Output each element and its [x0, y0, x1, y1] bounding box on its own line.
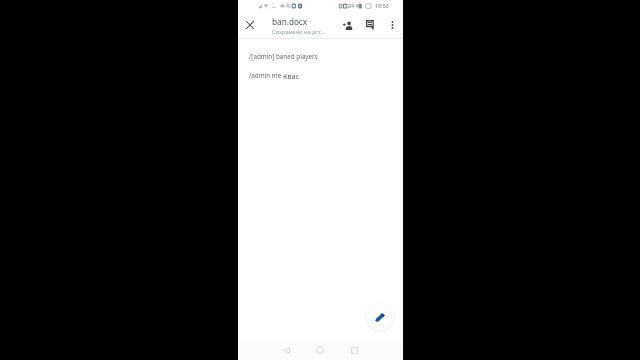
button[interactable]: Home: [310, 340, 330, 360]
button[interactable]: Close: [240, 15, 260, 35]
staticText: /[admin] baned players: [249, 52, 318, 61]
button[interactable]: Edit: [367, 304, 393, 330]
staticText: Сохранено на уст…: [272, 28, 325, 36]
staticText: ban.docx: [272, 16, 308, 27]
staticText: Квас: [283, 71, 300, 81]
button[interactable]: Share: [338, 15, 358, 35]
staticText: /admin me: [249, 71, 283, 80]
staticText: 18:53: [375, 2, 389, 9]
button[interactable]: Recents: [344, 340, 364, 360]
button[interactable]: Comments: [360, 15, 380, 35]
button[interactable]: More options: [382, 15, 402, 35]
button[interactable]: Back: [276, 340, 296, 360]
staticText: 24 %: [348, 2, 361, 9]
